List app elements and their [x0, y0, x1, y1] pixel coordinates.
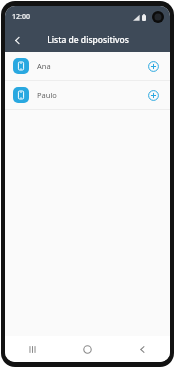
staticText: Ana [37, 61, 144, 71]
button[interactable]: Paulo [5, 81, 170, 109]
staticText: Lista de dispositivos [47, 34, 129, 46]
staticText: 12:00 [12, 12, 30, 22]
button[interactable]: Add Ana [144, 57, 162, 75]
button[interactable]: Back [5, 28, 29, 52]
button[interactable]: Recent apps [5, 336, 60, 362]
button[interactable]: Back [115, 336, 170, 362]
button[interactable]: Home [60, 336, 115, 362]
staticText: Paulo [37, 90, 144, 100]
button[interactable]: Ana [5, 52, 170, 80]
button[interactable]: Add Paulo [144, 86, 162, 104]
